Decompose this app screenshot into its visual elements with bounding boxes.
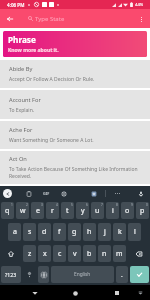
button[interactable]: Recents: [110, 286, 124, 300]
staticText: English: [74, 271, 91, 278]
button[interactable]: z: [23, 245, 36, 262]
button[interactable]: w: [16, 202, 29, 219]
button[interactable]: ?123: [1, 266, 21, 283]
staticText: To Explain.: [9, 107, 35, 114]
staticText: 6: [86, 203, 88, 207]
staticText: p: [140, 206, 145, 216]
staticText: Abide By: [9, 65, 33, 73]
button[interactable]: Abide By: [0, 60, 150, 88]
button[interactable]: Settings: [58, 188, 69, 199]
button[interactable]: .: [116, 266, 128, 283]
staticText: .: [121, 271, 123, 279]
staticText: n: [102, 249, 107, 259]
button[interactable]: n: [98, 245, 111, 262]
button[interactable]: e: [31, 202, 44, 219]
staticText: i: [112, 206, 114, 216]
staticText: s: [28, 227, 32, 237]
button[interactable]: c: [53, 245, 66, 262]
staticText: Type State: [35, 15, 65, 23]
staticText: 4:06 PM: [7, 2, 25, 8]
button[interactable]: a: [8, 223, 21, 241]
button[interactable]: Hide keyboard: [133, 286, 147, 300]
staticText: 0: [146, 203, 148, 207]
button[interactable]: b: [83, 245, 96, 262]
staticText: e: [36, 206, 40, 216]
staticText: j: [104, 227, 106, 237]
staticText: Account For: [9, 96, 41, 104]
button[interactable]: Expand toolbar: [3, 189, 12, 198]
staticText: To Take Action Because Of Something Like…: [9, 166, 142, 180]
button[interactable]: g: [68, 223, 81, 241]
staticText: r: [51, 206, 54, 216]
button[interactable]: Act On: [0, 151, 150, 184]
staticText: u: [95, 206, 100, 216]
staticText: Phrase: [8, 34, 36, 45]
button[interactable]: d: [38, 223, 51, 241]
button[interactable]: o: [121, 202, 134, 219]
staticText: GIF: [43, 191, 50, 196]
button[interactable]: y: [76, 202, 89, 219]
staticText: x: [43, 249, 47, 259]
button[interactable]: r: [46, 202, 59, 219]
button[interactable]: q: [1, 202, 14, 219]
button[interactable]: h: [83, 223, 96, 241]
button[interactable]: Enter: [130, 266, 149, 283]
button[interactable]: Account For: [0, 90, 150, 119]
staticText: 3: [41, 203, 43, 207]
staticText: g: [72, 227, 77, 237]
staticText: z: [28, 249, 32, 259]
button[interactable]: Ache For: [0, 121, 150, 149]
staticText: ?123: [5, 271, 17, 278]
staticText: w: [20, 206, 26, 216]
button[interactable]: f: [53, 223, 66, 241]
button[interactable]: j: [98, 223, 111, 241]
button[interactable]: k: [113, 223, 126, 241]
button[interactable]: Change language: [38, 266, 49, 283]
button[interactable]: GIF: [41, 188, 52, 199]
button[interactable]: Back: [3, 12, 17, 26]
button[interactable]: u: [91, 202, 104, 219]
button[interactable]: v: [68, 245, 81, 262]
button[interactable]: l: [128, 223, 141, 241]
staticText: m: [116, 249, 123, 259]
staticText: h: [87, 227, 92, 237]
staticText: k: [118, 227, 122, 237]
staticText: y: [81, 206, 85, 216]
button[interactable]: Home: [68, 286, 82, 300]
staticText: v: [73, 249, 77, 259]
staticText: Know more about it.: [8, 47, 59, 54]
button[interactable]: Settings: [23, 266, 36, 283]
button[interactable]: Clipboard: [23, 188, 34, 199]
staticText: a: [13, 227, 17, 237]
button[interactable]: m: [113, 245, 126, 262]
button[interactable]: Back: [28, 286, 42, 300]
staticText: 1: [11, 203, 13, 207]
button[interactable]: s: [23, 223, 36, 241]
staticText: 9: [131, 203, 133, 207]
staticText: 7: [101, 203, 103, 207]
staticText: q: [5, 206, 10, 216]
button[interactable]: More options: [112, 188, 123, 199]
staticText: l: [134, 227, 136, 237]
staticText: Act On: [9, 155, 27, 163]
staticText: f: [58, 227, 61, 237]
button[interactable]: Shift: [1, 245, 21, 262]
staticText: o: [125, 206, 130, 216]
button[interactable]: Sticker: [88, 188, 99, 199]
staticText: 2: [26, 203, 28, 207]
staticText: Ache For: [9, 126, 33, 134]
button[interactable]: Phrase: [3, 31, 147, 57]
staticText: 4: [56, 203, 58, 207]
button[interactable]: English: [51, 266, 114, 283]
button[interactable]: t: [61, 202, 74, 219]
staticText: 44%: [135, 2, 144, 8]
button[interactable]: Backspace: [128, 245, 149, 262]
button[interactable]: More options: [133, 11, 149, 27]
staticText: d: [42, 227, 47, 237]
button[interactable]: Voice input: [135, 188, 146, 199]
staticText: Accept Or Follow A Decision Or Rule.: [9, 76, 95, 83]
button[interactable]: x: [38, 245, 51, 262]
staticText: t: [66, 206, 69, 216]
button[interactable]: i: [106, 202, 119, 219]
button[interactable]: p: [136, 202, 149, 219]
